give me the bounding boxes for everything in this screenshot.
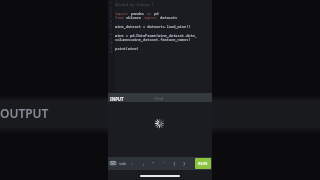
staticText: } [183,161,186,166]
staticText: wine = pd.DataFrame(wine_dataset.data, [115,33,197,38]
staticText: 1 [110,2,112,6]
button[interactable]: RUN [195,158,211,169]
staticText: OUTPUT [0,105,49,121]
staticText: 11 [109,46,113,50]
staticText: pd [154,11,159,16]
staticText: INPUT [110,96,124,102]
staticText: 9 [110,37,112,41]
staticText: " [152,161,155,166]
staticText: 2 [110,7,112,11]
staticText: columns=wine_dataset.feature_names) [115,37,191,42]
button[interactable]: ; [139,158,148,169]
staticText: from [115,15,126,20]
staticText: as [147,11,154,16]
button[interactable]: Keyboard [109,159,117,167]
staticText: import [115,11,131,16]
staticText: ; [142,161,145,166]
button[interactable]: " [149,158,158,169]
staticText: 7 [110,28,112,32]
button[interactable]: : [128,158,137,169]
staticText: ' [162,161,165,166]
staticText: 12 [109,50,113,54]
staticText: 4 [110,15,112,19]
staticText: 5 [110,20,112,24]
staticText: 6 [110,24,112,28]
staticText: import [144,15,160,20]
staticText: pandas [131,11,147,16]
button[interactable]: ' [159,158,168,169]
staticText: 3 [110,11,112,15]
staticText: 10 [109,41,113,45]
staticText: Cmd [155,96,163,101]
staticText: { [173,161,176,166]
staticText: : [131,161,134,166]
staticText: RUN [198,161,208,167]
staticText: #Coded by Andrew C [115,2,154,7]
staticText: datasets [160,15,178,20]
staticText: print(wine) [115,46,139,51]
button[interactable]: { [170,158,179,169]
staticText: tab [119,161,126,166]
button[interactable]: Cmd [148,93,170,102]
staticText: 8 [110,33,112,37]
staticText: wine_dataset = datasets.load_wine() [115,24,191,29]
staticText: sklearn [126,15,144,20]
button[interactable]: } [180,158,189,169]
button[interactable]: tab [118,158,127,169]
button[interactable]: INPUT [109,93,129,102]
